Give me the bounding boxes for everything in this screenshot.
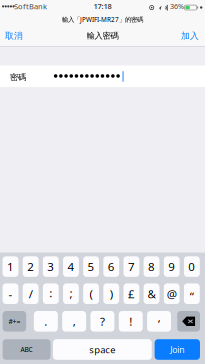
staticText: space bbox=[89, 343, 115, 356]
button[interactable]: & bbox=[144, 283, 159, 304]
button[interactable]: 1 bbox=[3, 256, 18, 277]
button[interactable]: 3 bbox=[43, 256, 59, 277]
staticText: 輸入「JPWIFI-MR27」的密碼 bbox=[62, 15, 143, 24]
staticText: / bbox=[29, 286, 33, 302]
staticText: 36% bbox=[170, 1, 184, 11]
staticText: ? bbox=[100, 313, 105, 329]
staticText: 8 bbox=[148, 259, 155, 274]
button[interactable]: #+= bbox=[3, 311, 26, 332]
staticText: 9 bbox=[168, 259, 175, 274]
staticText: 4 bbox=[67, 259, 74, 274]
button[interactable]: ( bbox=[83, 283, 99, 304]
button[interactable]: 5 bbox=[83, 256, 99, 277]
button[interactable]: ; bbox=[63, 283, 79, 304]
button[interactable]: @ bbox=[164, 283, 180, 304]
button[interactable]: 取消 bbox=[0, 27, 35, 44]
button[interactable]: Join bbox=[155, 339, 200, 360]
staticText: 取消 bbox=[5, 30, 23, 41]
button[interactable]: “ bbox=[184, 283, 200, 304]
staticText: @ bbox=[167, 286, 177, 302]
staticText: 0 bbox=[188, 259, 195, 274]
button[interactable]: ? bbox=[90, 311, 114, 332]
staticText: & bbox=[147, 286, 155, 302]
staticText: ! bbox=[129, 313, 132, 329]
button[interactable]: , bbox=[62, 311, 86, 332]
staticText: ’ bbox=[158, 316, 160, 332]
staticText: 7 bbox=[128, 259, 135, 274]
staticText: ( bbox=[90, 286, 93, 302]
staticText: ; bbox=[69, 285, 72, 301]
staticText: ) bbox=[110, 286, 113, 302]
staticText: ABC bbox=[21, 345, 33, 354]
button[interactable]: - bbox=[3, 283, 18, 304]
button[interactable]: 2 bbox=[23, 256, 39, 277]
button[interactable]: ! bbox=[119, 311, 143, 332]
button[interactable]: Delete bbox=[177, 311, 200, 332]
button[interactable]: 加入 bbox=[169, 27, 205, 44]
button[interactable]: ) bbox=[103, 283, 119, 304]
button[interactable]: 8 bbox=[144, 256, 159, 277]
staticText: 3 bbox=[47, 259, 54, 274]
staticText: 輸入密碼 bbox=[86, 30, 118, 41]
button[interactable]: / bbox=[23, 283, 39, 304]
staticText: 5 bbox=[88, 259, 95, 274]
button[interactable]: space bbox=[53, 339, 152, 360]
button[interactable]: 4 bbox=[63, 256, 79, 277]
button[interactable]: . bbox=[34, 311, 58, 332]
staticText: “ bbox=[190, 288, 194, 304]
button[interactable]: 7 bbox=[123, 256, 139, 277]
staticText: , bbox=[73, 313, 76, 329]
staticText: SoftBank bbox=[14, 1, 47, 11]
button[interactable]: : bbox=[43, 283, 59, 304]
staticText: 17:18 bbox=[93, 1, 111, 11]
staticText: 加入 bbox=[181, 30, 199, 41]
staticText: - bbox=[8, 286, 12, 302]
staticText: . bbox=[44, 313, 47, 329]
staticText: 密碼 bbox=[10, 72, 26, 82]
staticText: #+= bbox=[8, 317, 20, 326]
button[interactable]: 9 bbox=[164, 256, 180, 277]
staticText: 6 bbox=[108, 259, 115, 274]
staticText: 1 bbox=[7, 259, 14, 274]
staticText: £ bbox=[128, 286, 135, 302]
staticText: : bbox=[49, 285, 52, 301]
button[interactable]: ’ bbox=[147, 311, 171, 332]
button[interactable]: £ bbox=[123, 283, 139, 304]
staticText: Join bbox=[170, 343, 184, 355]
button[interactable]: 0 bbox=[184, 256, 200, 277]
staticText: 2 bbox=[27, 259, 34, 274]
button[interactable]: 6 bbox=[103, 256, 119, 277]
button[interactable]: ABC bbox=[3, 339, 51, 360]
